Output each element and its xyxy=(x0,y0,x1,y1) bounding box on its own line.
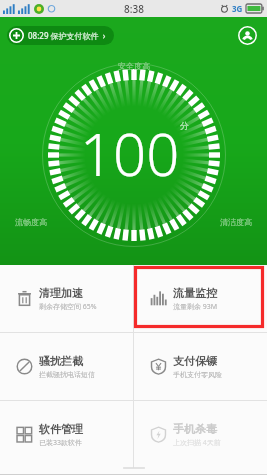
staticText: 软件管理 xyxy=(39,422,83,436)
button[interactable]: 软件管理 xyxy=(0,401,133,468)
button[interactable]: 手机杀毒 xyxy=(134,401,267,468)
staticText: 8:38 xyxy=(124,2,144,16)
staticText: 支付保镖 xyxy=(173,354,217,368)
button[interactable]: 骚扰拦截 xyxy=(0,333,133,400)
staticText: 已装33款软件 xyxy=(39,438,83,448)
staticText: 3G xyxy=(232,3,243,14)
staticText: 手机杀毒 xyxy=(173,422,217,436)
staticText: 流量剩余 93M xyxy=(173,302,218,312)
staticText: 拦截骚扰电话短信 xyxy=(39,370,95,379)
staticText: 骚扰拦截 xyxy=(39,354,83,368)
staticText: 清洁度高 xyxy=(220,217,252,227)
button[interactable]: 流量监控 xyxy=(134,265,267,332)
staticText: 分 xyxy=(180,120,189,131)
staticText: 清理加速 xyxy=(39,286,83,300)
button[interactable]: Account xyxy=(234,22,260,48)
staticText: 流畅度高 xyxy=(15,217,47,227)
staticText: 剩余存储空间 65% xyxy=(39,302,97,312)
staticText: 08:29 保护支付软件 › xyxy=(28,30,106,41)
button[interactable]: 清理加速 xyxy=(0,265,133,332)
button[interactable]: 支付保镖 xyxy=(134,333,267,400)
staticText: 上次扫描 4天前 xyxy=(173,438,221,448)
staticText: 流量监控 xyxy=(173,286,217,300)
staticText: 手机支付零风险 xyxy=(173,370,222,379)
staticText: 安全度高 xyxy=(118,61,150,71)
button[interactable]: 08:29 保护支付软件 › xyxy=(7,26,114,45)
staticText: 100 xyxy=(80,114,180,193)
